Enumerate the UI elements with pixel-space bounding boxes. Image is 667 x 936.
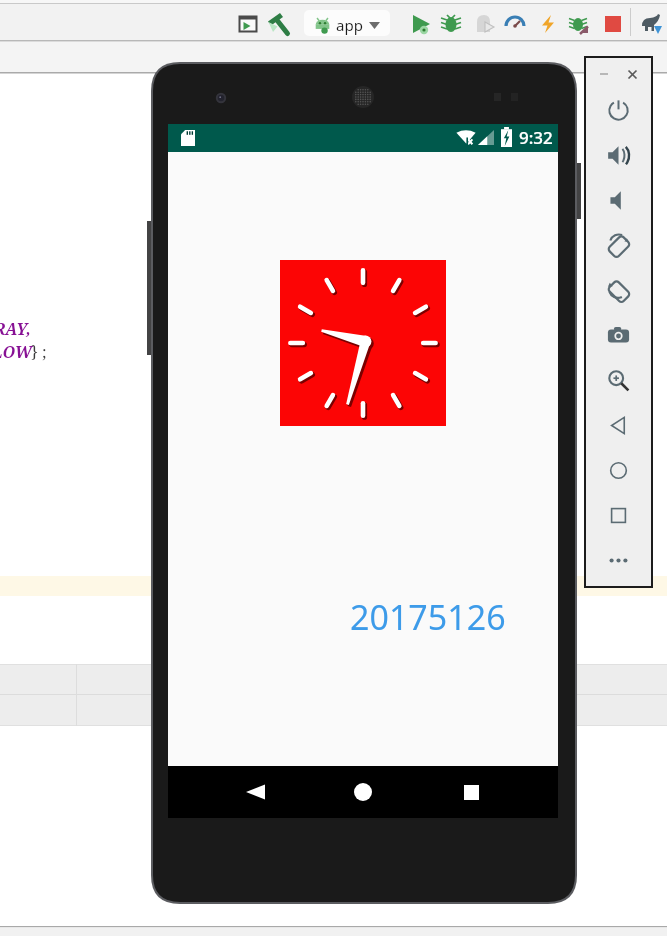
staticText: } ;	[31, 341, 47, 363]
button[interactable]: Minimize	[592, 62, 616, 86]
button[interactable]: Rotate right	[598, 270, 638, 310]
button[interactable]: Debug	[438, 11, 464, 37]
staticText: 9:32	[519, 126, 553, 149]
button[interactable]: Volume up	[598, 135, 638, 175]
button[interactable]: Power	[598, 90, 638, 130]
button[interactable]: Rotate left	[598, 225, 638, 265]
button[interactable]: Overview	[598, 495, 638, 535]
staticText: 20175126	[350, 594, 506, 640]
button[interactable]: Layout editor	[235, 11, 261, 37]
button[interactable]: Zoom	[598, 360, 638, 400]
button[interactable]: Stop	[600, 11, 626, 37]
button[interactable]: Back	[598, 405, 638, 445]
button[interactable]: Home	[338, 776, 388, 808]
button[interactable]: Attach debugger to process	[471, 11, 497, 37]
button[interactable]: Volume down	[598, 180, 638, 220]
staticText: LOW	[0, 341, 32, 363]
button[interactable]: More	[598, 540, 638, 580]
button[interactable]: Make project	[266, 11, 292, 37]
button[interactable]: Screenshot	[598, 315, 638, 355]
button[interactable]: Apply changes	[535, 11, 561, 37]
button[interactable]: Sync project	[567, 11, 593, 37]
button[interactable]: Profiler	[502, 11, 528, 37]
button[interactable]: Run	[408, 11, 434, 37]
button[interactable]: Recents	[446, 776, 496, 808]
staticText: app	[336, 15, 363, 35]
button[interactable]: app	[304, 10, 390, 36]
button[interactable]: Gradle	[638, 11, 664, 37]
button[interactable]: Home	[598, 450, 638, 490]
button[interactable]: Close	[620, 62, 644, 86]
button[interactable]: Back	[230, 776, 280, 808]
staticText: RAY,	[0, 318, 31, 340]
